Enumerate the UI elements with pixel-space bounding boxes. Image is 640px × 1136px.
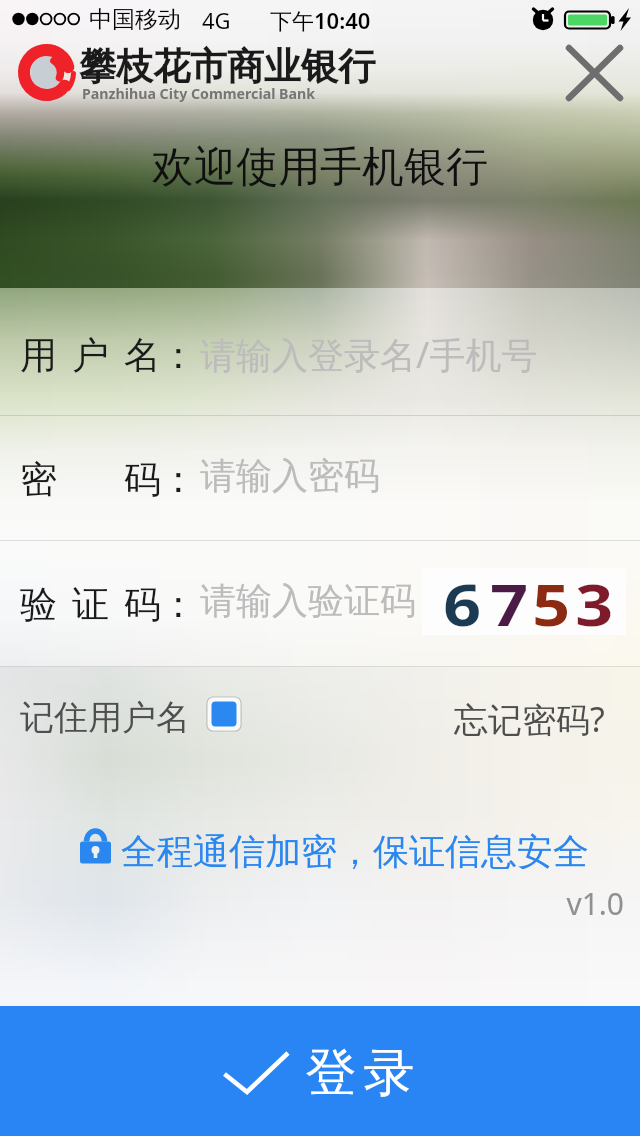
- staticText: 请输入验证码: [200, 578, 416, 623]
- staticText: 证: [72, 581, 109, 628]
- staticText: 欢迎使用手机银行: [0, 141, 640, 194]
- staticText: 3: [575, 565, 614, 632]
- staticText: v1.0: [440, 883, 624, 924]
- staticText: 5: [532, 565, 571, 632]
- staticText: 名: [124, 332, 161, 379]
- button[interactable]: 忘记密码?: [440, 667, 620, 763]
- staticText: 7: [490, 565, 529, 632]
- button[interactable]: 用: [0, 287, 640, 415]
- staticText: 记住用户名: [20, 696, 190, 739]
- button[interactable]: 密: [0, 416, 640, 540]
- staticText: 请输入登录名/手机号: [200, 330, 538, 379]
- staticText: 登录: [302, 1041, 418, 1105]
- staticText: [72, 456, 82, 506]
- button[interactable]: 验: [0, 541, 640, 666]
- staticText: 忘记密码?: [454, 696, 605, 742]
- button[interactable]: 记住用户名: [0, 667, 640, 763]
- staticText: 验: [20, 581, 57, 628]
- staticText: 4G: [202, 5, 231, 35]
- staticText: 码: [124, 581, 161, 628]
- staticText: ：: [160, 456, 197, 503]
- button[interactable]: Refresh verification code: [422, 568, 626, 635]
- staticText: ：: [160, 332, 197, 379]
- staticText: 全程通信加密，保证信息安全: [121, 829, 589, 874]
- staticText: 攀枝花市商业银行: [79, 43, 375, 90]
- staticText: ：: [160, 581, 197, 628]
- staticText: 户: [72, 332, 109, 379]
- staticText: 码: [124, 456, 161, 503]
- button[interactable]: 登录: [0, 1006, 640, 1136]
- staticText: 密: [20, 456, 57, 503]
- staticText: 中国移动: [89, 5, 181, 34]
- staticText: 用: [20, 332, 57, 379]
- staticText: 6: [443, 565, 482, 632]
- staticText: 下午10:40: [270, 5, 371, 35]
- button[interactable]: Close: [562, 40, 626, 104]
- staticText: 请输入密码: [200, 453, 380, 498]
- staticText: Panzhihua City Commercial Bank: [82, 84, 316, 103]
